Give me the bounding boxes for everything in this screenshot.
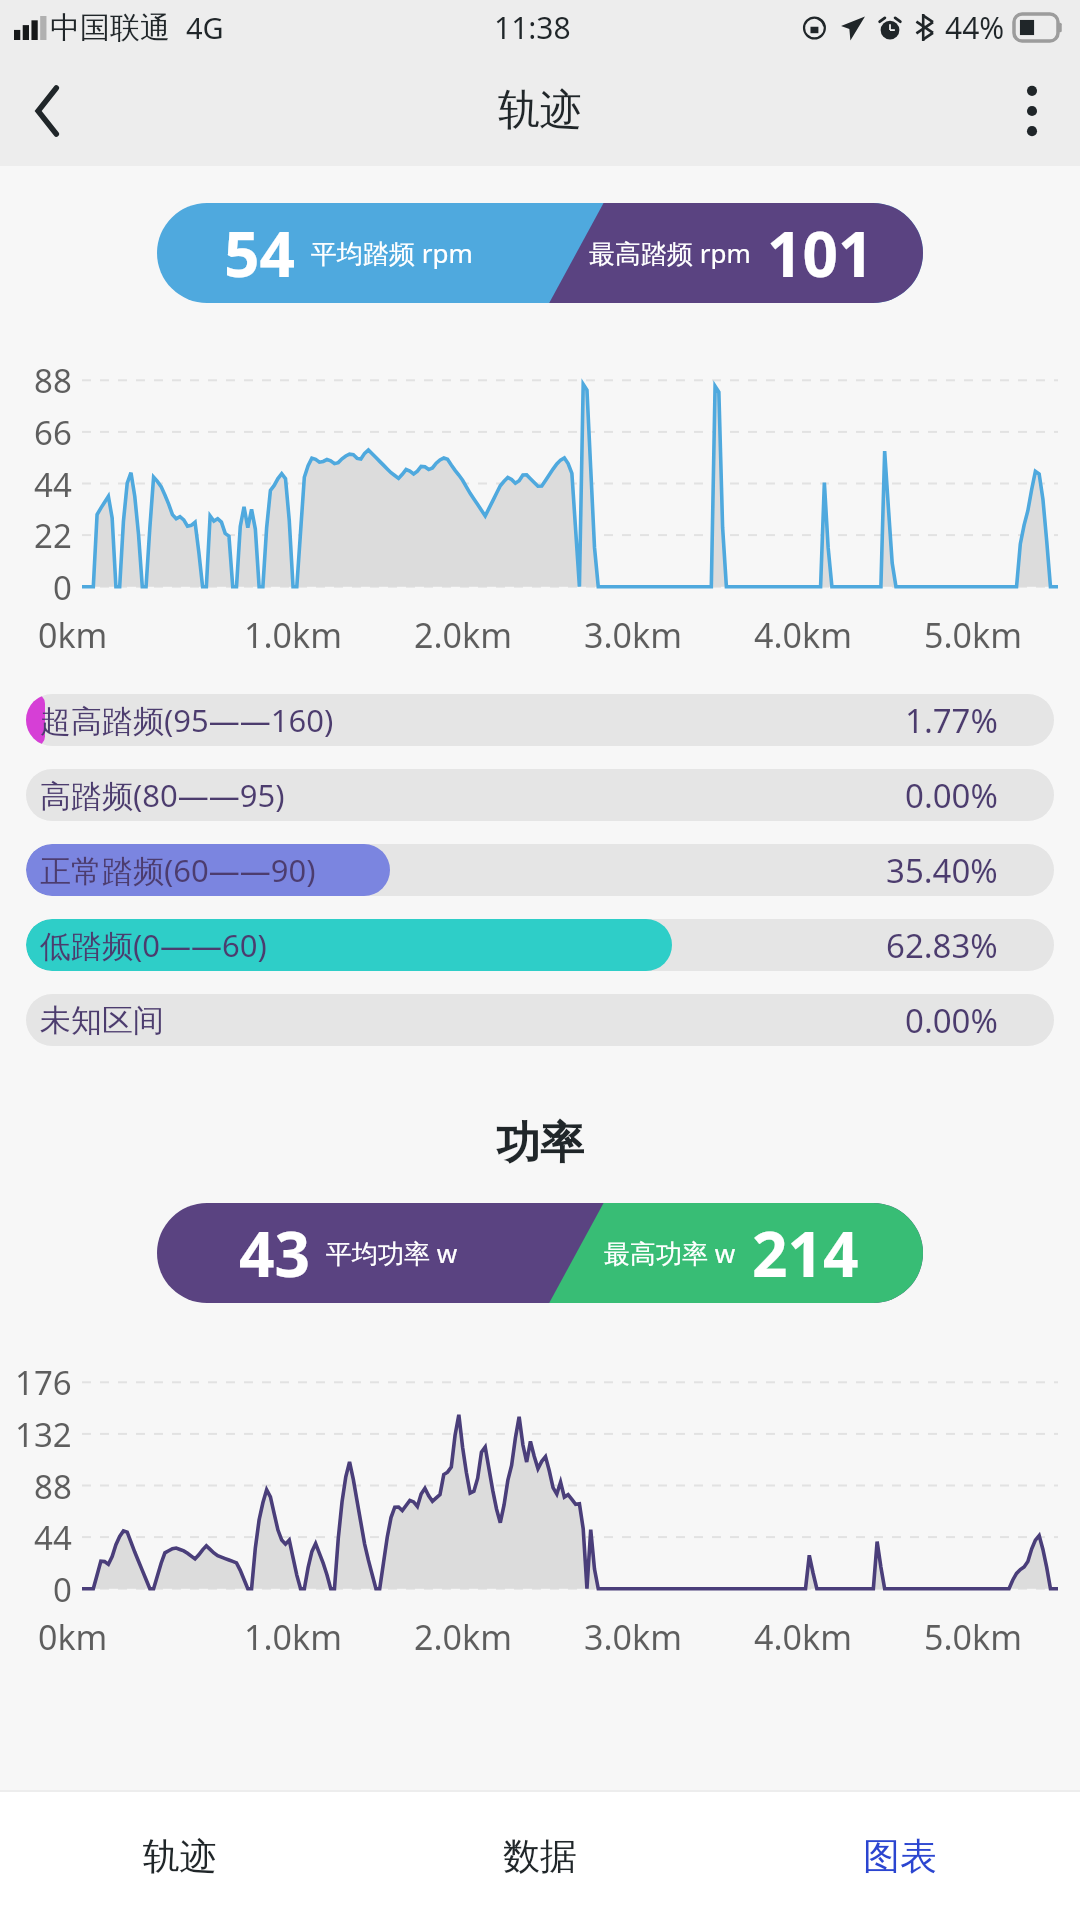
staticText: 44 xyxy=(34,462,72,507)
staticText: 3.0km xyxy=(584,612,682,658)
button[interactable]: More options xyxy=(984,63,1080,159)
staticText: 1.0km xyxy=(244,612,342,658)
staticText: 功率 xyxy=(0,1116,1080,1171)
button[interactable]: 正常踏频(60——90) xyxy=(26,844,1054,896)
staticText: 0km xyxy=(38,612,108,658)
staticText: 5.0km xyxy=(924,612,1022,658)
staticText: 最高功率 w xyxy=(604,1235,736,1271)
staticText: 3.0km xyxy=(584,1614,682,1660)
staticText: 54 xyxy=(224,211,295,295)
staticText: 62.83% xyxy=(886,923,998,968)
staticText: 176 xyxy=(15,1360,72,1405)
staticText: 132 xyxy=(15,1412,72,1457)
staticText: 4.0km xyxy=(754,612,852,658)
staticText: 平均功率 w xyxy=(326,1235,458,1271)
button[interactable]: 43 xyxy=(157,1203,923,1303)
staticText: 88 xyxy=(34,358,72,403)
staticText: 0.00% xyxy=(905,998,998,1043)
staticText: 超高踏频(95——160) xyxy=(40,699,334,741)
button[interactable]: 图表 xyxy=(720,1792,1080,1920)
staticText: 低踏频(0——60) xyxy=(40,924,267,966)
staticText: 44% xyxy=(945,7,1005,48)
staticText: 中国联通 xyxy=(50,9,170,47)
staticText: 35.40% xyxy=(886,848,998,893)
staticText: 43 xyxy=(239,1211,310,1295)
staticText: 平均踏频 rpm xyxy=(311,235,473,271)
staticText: 22 xyxy=(34,513,72,558)
staticText: 4.0km xyxy=(754,1614,852,1660)
staticText: 0 xyxy=(53,565,72,610)
staticText: 轨迹 xyxy=(498,84,582,137)
staticText: 2.0km xyxy=(414,612,512,658)
staticText: 数据 xyxy=(503,1833,577,1880)
staticText: 高踏频(80——95) xyxy=(40,774,285,816)
button[interactable]: 低踏频(0——60) xyxy=(26,919,1054,971)
button[interactable]: 数据 xyxy=(360,1792,720,1920)
staticText: 1.0km xyxy=(244,1614,342,1660)
staticText: 101 xyxy=(767,211,874,295)
staticText: 0 xyxy=(53,1567,72,1612)
staticText: 0km xyxy=(38,1614,108,1660)
staticText: 1.77% xyxy=(905,698,998,743)
button[interactable]: 54 xyxy=(157,203,923,303)
staticText: 44 xyxy=(34,1515,72,1560)
staticText: 5.0km xyxy=(924,1614,1022,1660)
staticText: 最高踏频 rpm xyxy=(589,235,751,271)
staticText: 2.0km xyxy=(414,1614,512,1660)
staticText: 11:38 xyxy=(494,7,571,48)
button[interactable]: 超高踏频(95——160) xyxy=(26,694,1054,746)
button[interactable]: 未知区间 xyxy=(26,994,1054,1046)
button[interactable]: 高踏频(80——95) xyxy=(26,769,1054,821)
staticText: 214 xyxy=(752,1211,859,1295)
staticText: 0.00% xyxy=(905,773,998,818)
button[interactable]: Back xyxy=(0,63,96,159)
staticText: 66 xyxy=(34,410,72,455)
staticText: 图表 xyxy=(863,1833,937,1880)
staticText: 未知区间 xyxy=(40,1001,164,1040)
staticText: 88 xyxy=(34,1464,72,1509)
button[interactable]: 轨迹 xyxy=(0,1792,360,1920)
staticText: 轨迹 xyxy=(143,1833,217,1880)
staticText: 4G xyxy=(186,8,224,47)
staticText: 正常踏频(60——90) xyxy=(40,849,316,891)
